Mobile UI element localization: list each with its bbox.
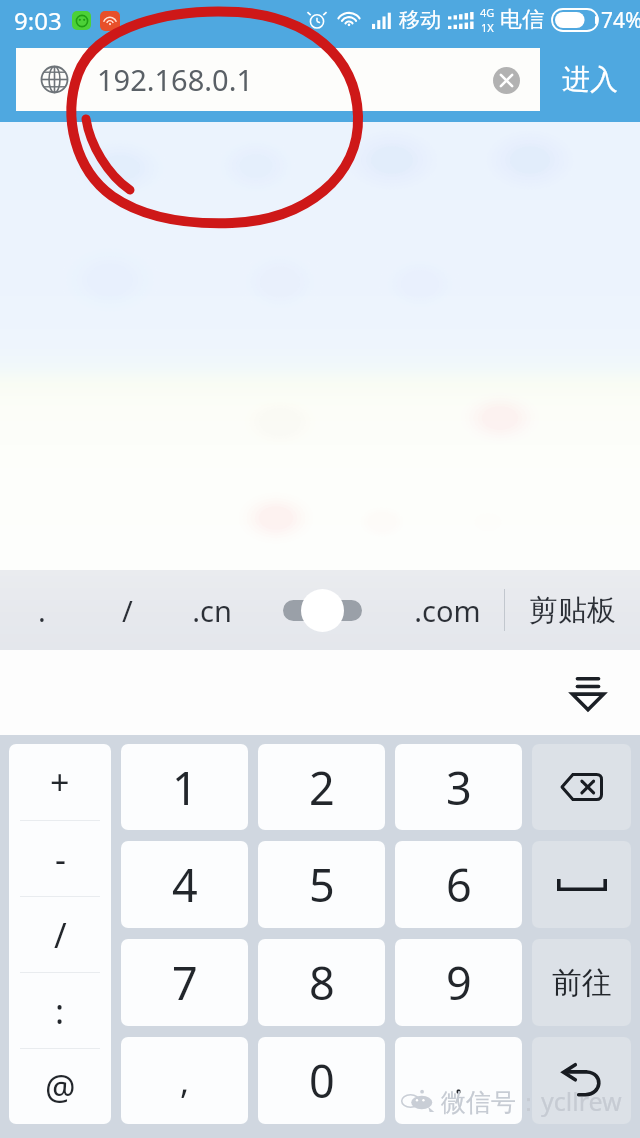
button[interactable] (281, 587, 363, 633)
button[interactable]: 192.168.0.1 (16, 48, 540, 111)
staticText: 9:03 (14, 4, 62, 37)
button[interactable]: . (0, 570, 84, 650)
button[interactable]: 剪贴板 (505, 570, 640, 650)
button[interactable]: : (9, 973, 111, 1048)
button[interactable]: 2 (258, 744, 385, 830)
button[interactable]: .com (390, 570, 504, 650)
staticText: 8 (309, 952, 335, 1013)
button[interactable]: @ (9, 1049, 111, 1124)
staticText: 剪贴板 (529, 592, 616, 629)
staticText: 9 (446, 952, 472, 1013)
staticText: 4G (480, 5, 495, 20)
button[interactable]: / (9, 897, 111, 972)
staticText: 0 (309, 1050, 335, 1111)
button[interactable]: 前往 (532, 939, 631, 1026)
staticText: 电信 (500, 6, 544, 34)
staticText: 4 (172, 854, 198, 915)
staticText: .cn (192, 591, 232, 630)
staticText: : (55, 988, 65, 1034)
staticText: 前往 (552, 964, 612, 1002)
button[interactable]: 进入 (540, 48, 640, 111)
staticText: 移动 (399, 7, 441, 33)
button[interactable]: - (9, 821, 111, 896)
staticText: .com (414, 591, 481, 630)
staticText: , (180, 1058, 190, 1104)
button[interactable]: Space (532, 841, 631, 928)
staticText: 74% (601, 6, 640, 35)
staticText: / (54, 912, 67, 958)
staticText: 192.168.0.1 (97, 60, 254, 99)
staticText: 1 (172, 757, 198, 818)
staticText: 6 (446, 854, 472, 915)
staticText: 3 (446, 757, 472, 818)
staticText: . (38, 591, 46, 630)
staticText: / (122, 591, 133, 630)
button[interactable]: Backspace (532, 744, 631, 830)
staticText: 进入 (562, 62, 618, 97)
button[interactable]: , (121, 1037, 248, 1124)
button[interactable]: 7 (121, 939, 248, 1026)
button[interactable]: / (84, 570, 170, 650)
button[interactable]: Return (532, 1037, 631, 1124)
button[interactable]: . (395, 1037, 522, 1124)
button[interactable]: 3 (395, 744, 522, 830)
staticText: 微信号：ycllrew (441, 1084, 622, 1118)
button[interactable]: 1 (121, 744, 248, 830)
staticText: - (55, 836, 66, 882)
button[interactable]: 5 (258, 841, 385, 928)
staticText: 5 (309, 854, 335, 915)
staticText: + (50, 759, 70, 805)
button[interactable]: 0 (258, 1037, 385, 1124)
button[interactable]: 6 (395, 841, 522, 928)
staticText: 7 (172, 952, 198, 1013)
button[interactable]: Clear (484, 58, 528, 102)
button[interactable]: 4 (121, 841, 248, 928)
button[interactable]: + (9, 744, 111, 820)
button[interactable]: Hide keyboard (558, 663, 618, 723)
button[interactable]: 8 (258, 939, 385, 1026)
staticText: 1X (481, 20, 494, 35)
button[interactable]: .cn (170, 570, 254, 650)
staticText: @ (45, 1064, 76, 1110)
staticText: . (454, 1058, 464, 1104)
button[interactable]: 9 (395, 939, 522, 1026)
staticText: 2 (309, 757, 335, 818)
